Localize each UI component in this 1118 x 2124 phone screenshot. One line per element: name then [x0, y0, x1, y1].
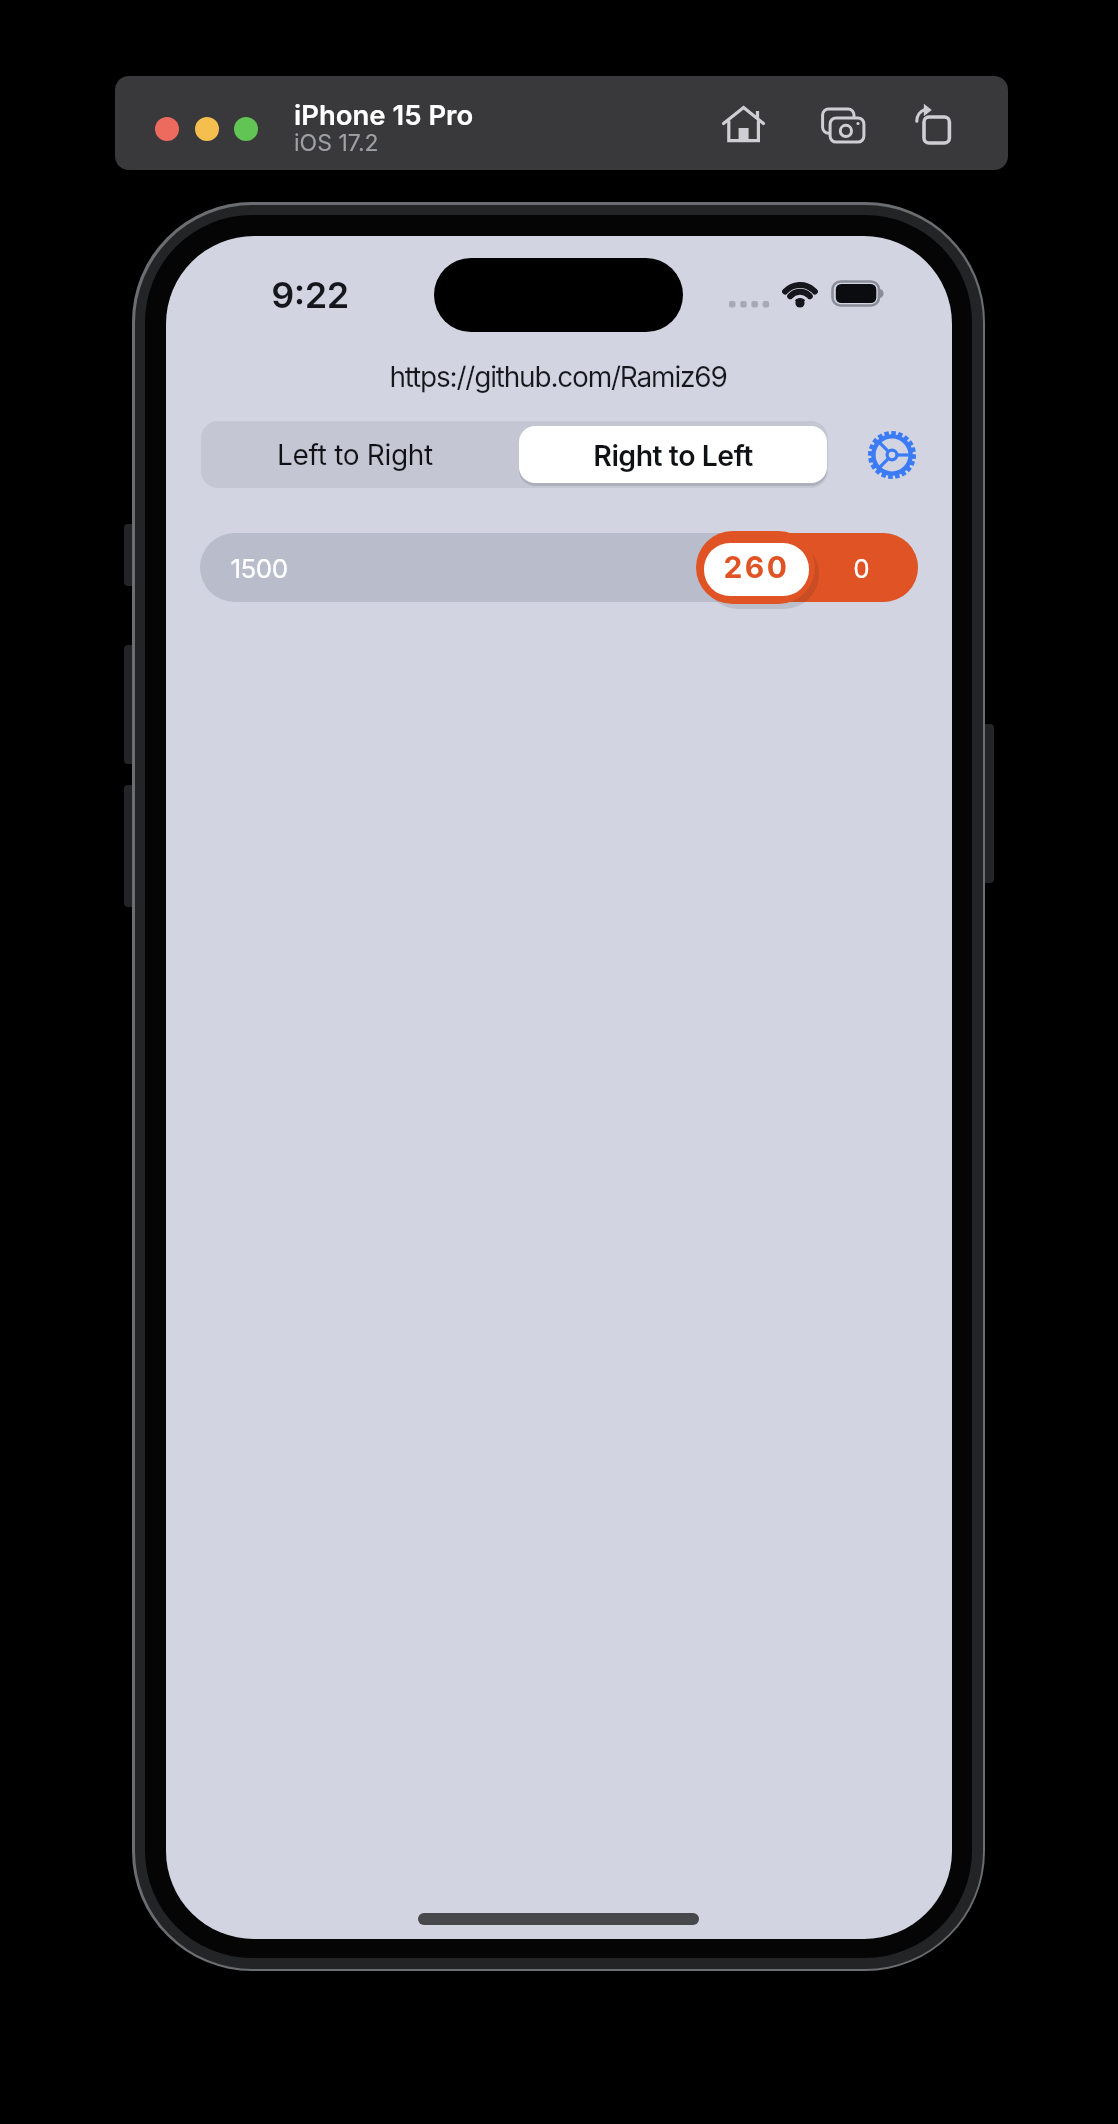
button[interactable] [155, 117, 179, 141]
staticText: https://github.com/Ramiz69 [389, 360, 727, 394]
staticText: Left to Right [277, 438, 433, 472]
staticText: 260 [723, 549, 790, 585]
staticText: Right to Left [593, 438, 753, 472]
staticText: 9:22 [271, 273, 349, 317]
button[interactable] [234, 117, 258, 141]
staticText: 1500 [230, 553, 288, 584]
button[interactable] [519, 426, 827, 483]
button[interactable] [866, 429, 918, 481]
button[interactable] [912, 102, 960, 150]
staticText: iOS 17.2 [294, 129, 379, 157]
button[interactable] [720, 102, 768, 150]
button[interactable] [696, 531, 815, 604]
button[interactable] [195, 117, 219, 141]
staticText: iPhone 15 Pro [294, 98, 474, 131]
button[interactable] [818, 102, 868, 150]
staticText: 0 [853, 553, 870, 584]
button[interactable] [201, 421, 515, 488]
